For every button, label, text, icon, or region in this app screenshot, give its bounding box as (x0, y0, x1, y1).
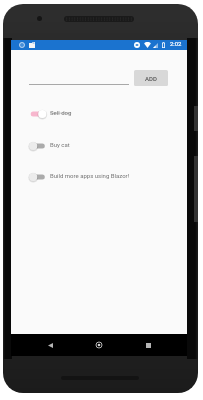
button[interactable]: Home (87, 334, 111, 356)
button[interactable]: Build more apps using Blazor! (11, 166, 187, 188)
button[interactable]: ADD (134, 70, 168, 86)
staticText: ADD (145, 75, 157, 82)
staticText: 2:02 (170, 41, 182, 48)
button[interactable]: Recent apps (136, 334, 160, 356)
staticText: Build more apps using Blazor! (50, 172, 130, 179)
button[interactable]: Sell dog (11, 103, 187, 125)
button[interactable]: Back (38, 334, 62, 356)
button[interactable]: Buy cat (11, 135, 187, 157)
staticText: Sell dog (50, 109, 72, 116)
staticText: Buy cat (50, 141, 70, 148)
